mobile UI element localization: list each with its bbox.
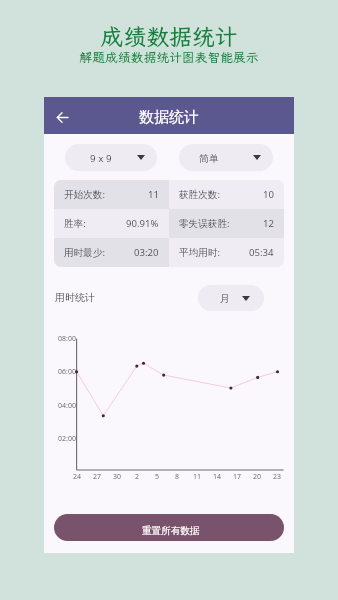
- button[interactable]: 平均用时:: [169, 238, 284, 267]
- staticText: 14: [209, 472, 225, 482]
- button[interactable]: 胜率:: [54, 209, 169, 238]
- staticText: 05:34: [249, 246, 274, 259]
- staticText: 开始次数:: [64, 188, 105, 201]
- button[interactable]: 开始次数:: [54, 180, 169, 209]
- button[interactable]: 9 x 9: [65, 144, 157, 171]
- button[interactable]: 月: [198, 285, 264, 311]
- button[interactable]: 简单: [179, 144, 273, 171]
- staticText: 04:00: [48, 401, 76, 411]
- staticText: 02:00: [48, 434, 76, 444]
- staticText: 06:00: [48, 367, 76, 377]
- staticText: 零失误获胜:: [179, 217, 230, 230]
- button[interactable]: Back: [47, 102, 77, 132]
- staticText: 用时最少:: [64, 246, 105, 259]
- staticText: 胜率:: [64, 217, 86, 230]
- staticText: 11: [148, 188, 159, 201]
- staticText: 获胜次数:: [179, 188, 220, 201]
- staticText: 解题成绩数据统计图表智能展示: [0, 49, 338, 66]
- staticText: 11: [189, 472, 205, 482]
- staticText: 平均用时:: [179, 246, 220, 259]
- staticText: 20: [249, 472, 265, 482]
- staticText: 24: [69, 472, 85, 482]
- staticText: 9 x 9: [90, 152, 112, 165]
- staticText: 用时统计: [55, 291, 95, 304]
- button[interactable]: 获胜次数:: [169, 180, 284, 209]
- staticText: 30: [109, 472, 125, 482]
- button[interactable]: 用时最少:: [54, 238, 169, 267]
- staticText: 重置所有数据: [142, 525, 200, 537]
- button[interactable]: 重置所有数据: [54, 514, 284, 541]
- staticText: 数据统计: [139, 108, 199, 127]
- staticText: 23: [269, 472, 285, 482]
- staticText: 成绩数据统计: [0, 21, 338, 51]
- staticText: 17: [229, 472, 245, 482]
- staticText: 27: [89, 472, 105, 482]
- staticText: 2: [129, 472, 145, 482]
- staticText: 8: [169, 472, 185, 482]
- staticText: 10: [263, 188, 274, 201]
- staticText: 03:20: [134, 246, 159, 259]
- staticText: 08:00: [48, 334, 76, 344]
- staticText: 5: [149, 472, 165, 482]
- button[interactable]: 零失误获胜:: [169, 209, 284, 238]
- staticText: 90.91%: [126, 217, 159, 230]
- staticText: 12: [263, 217, 274, 230]
- staticText: 月: [220, 293, 230, 305]
- staticText: 简单: [199, 153, 219, 165]
